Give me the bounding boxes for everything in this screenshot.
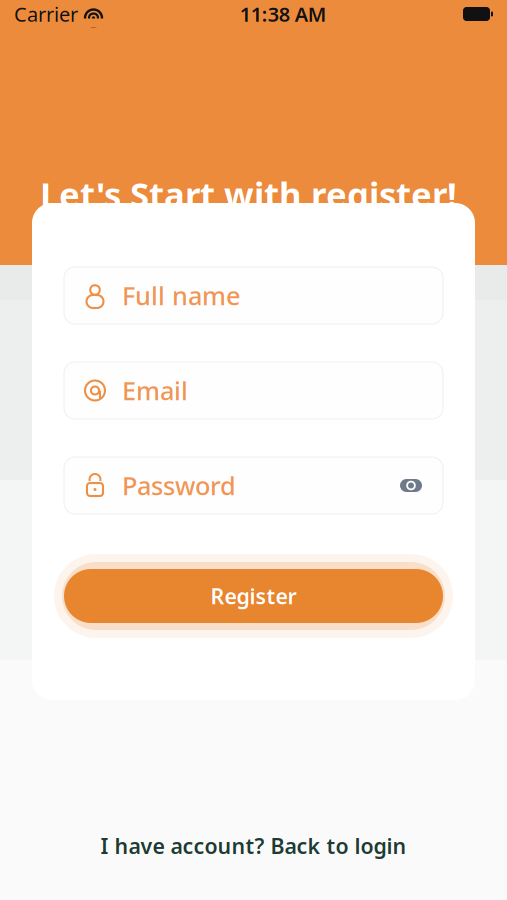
staticText: Carrier [14, 1, 78, 27]
staticText: Register [210, 582, 296, 610]
staticText: Password [122, 469, 236, 502]
staticText: Let's Start with register! [40, 171, 457, 217]
staticText: Email [122, 374, 188, 407]
staticText: Full name [122, 279, 241, 312]
button[interactable]: Password [64, 457, 443, 514]
button[interactable]: Email [64, 362, 443, 419]
button[interactable]: I have account? Back to login [82, 822, 424, 870]
staticText: I have account? Back to login [100, 832, 406, 860]
button[interactable]: Register [64, 569, 443, 623]
button[interactable]: Full name [64, 267, 443, 324]
staticText: 11:38 AM [240, 1, 327, 27]
